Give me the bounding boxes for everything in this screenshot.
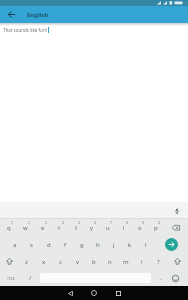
staticText: k — [128, 241, 132, 249]
button[interactable] — [169, 270, 182, 286]
button[interactable]: y — [84, 219, 100, 236]
button[interactable]: c — [52, 253, 69, 270]
staticText: 6 — [94, 220, 97, 225]
button[interactable]: b — [86, 253, 102, 270]
button[interactable]: n — [102, 253, 118, 270]
button[interactable] — [0, 253, 18, 270]
button[interactable]: ! — [134, 253, 150, 270]
button[interactable] — [86, 286, 102, 300]
staticText: ? — [157, 258, 160, 266]
staticText: n — [108, 258, 112, 266]
button[interactable]: ? — [150, 253, 166, 270]
staticText: s — [30, 241, 33, 249]
staticText: m — [123, 258, 129, 266]
staticText: j — [113, 241, 115, 249]
button[interactable] — [154, 236, 188, 253]
button[interactable]: t — [68, 219, 84, 236]
button[interactable]: g — [74, 236, 90, 253]
staticText: i — [123, 224, 125, 232]
staticText: 8 — [126, 220, 129, 225]
button[interactable]: s — [23, 236, 40, 253]
button[interactable]: v — [69, 253, 86, 270]
button[interactable]: l — [138, 236, 154, 253]
staticText: 0 — [158, 220, 161, 225]
staticText: ?123 — [7, 276, 15, 281]
button[interactable]: u — [100, 219, 116, 236]
staticText: o — [138, 224, 142, 232]
button[interactable]: p — [148, 219, 164, 236]
button[interactable] — [166, 253, 188, 270]
button[interactable]: z — [18, 253, 35, 270]
button[interactable]: r — [51, 219, 68, 236]
staticText: u — [106, 224, 110, 232]
staticText: q — [7, 224, 11, 232]
staticText: t — [75, 224, 78, 232]
button[interactable]: w — [17, 219, 34, 236]
staticText: w — [23, 224, 28, 232]
staticText: d — [47, 241, 51, 249]
button[interactable]: f — [57, 236, 74, 253]
button[interactable]: i — [116, 219, 132, 236]
button[interactable]: q — [0, 219, 17, 236]
staticText: r — [58, 224, 61, 232]
staticText: e — [41, 224, 45, 232]
button[interactable]: k — [122, 236, 138, 253]
staticText: 5 — [78, 220, 81, 225]
staticText: z — [25, 258, 28, 266]
button[interactable] — [0, 6, 23, 23]
staticText: 4 — [62, 220, 65, 225]
button[interactable]: m — [118, 253, 134, 270]
staticText: f — [64, 241, 67, 249]
button[interactable]: / — [22, 270, 39, 286]
staticText: English — [27, 11, 49, 19]
staticText: l — [145, 241, 147, 249]
staticText: That sounds like fun! — [3, 27, 47, 33]
staticText: / — [29, 274, 32, 282]
staticText: 7 — [110, 220, 113, 225]
staticText: 3 — [45, 220, 48, 225]
staticText: p — [154, 224, 158, 232]
button[interactable]: e — [34, 219, 51, 236]
staticText: y — [90, 224, 94, 232]
staticText: b — [92, 258, 96, 266]
button[interactable] — [62, 286, 78, 300]
staticText: x — [42, 258, 46, 266]
button[interactable] — [164, 219, 188, 236]
staticText: g — [80, 241, 84, 249]
button[interactable] — [110, 286, 126, 300]
button[interactable]: h — [90, 236, 106, 253]
button[interactable]: x — [35, 253, 52, 270]
staticText: . — [160, 274, 162, 282]
staticText: h — [96, 241, 100, 249]
button[interactable]: o — [132, 219, 148, 236]
button[interactable]: a — [6, 236, 23, 253]
button[interactable]: d — [40, 236, 57, 253]
staticText: v — [76, 258, 80, 266]
staticText: a — [13, 241, 17, 249]
button[interactable] — [166, 202, 188, 219]
staticText: ! — [141, 258, 143, 266]
staticText: 1 — [11, 220, 14, 225]
staticText: 2 — [28, 220, 31, 225]
button[interactable]: j — [106, 236, 122, 253]
staticText: 9 — [142, 220, 145, 225]
button[interactable]: ?123 — [0, 270, 22, 286]
staticText: c — [59, 258, 62, 266]
